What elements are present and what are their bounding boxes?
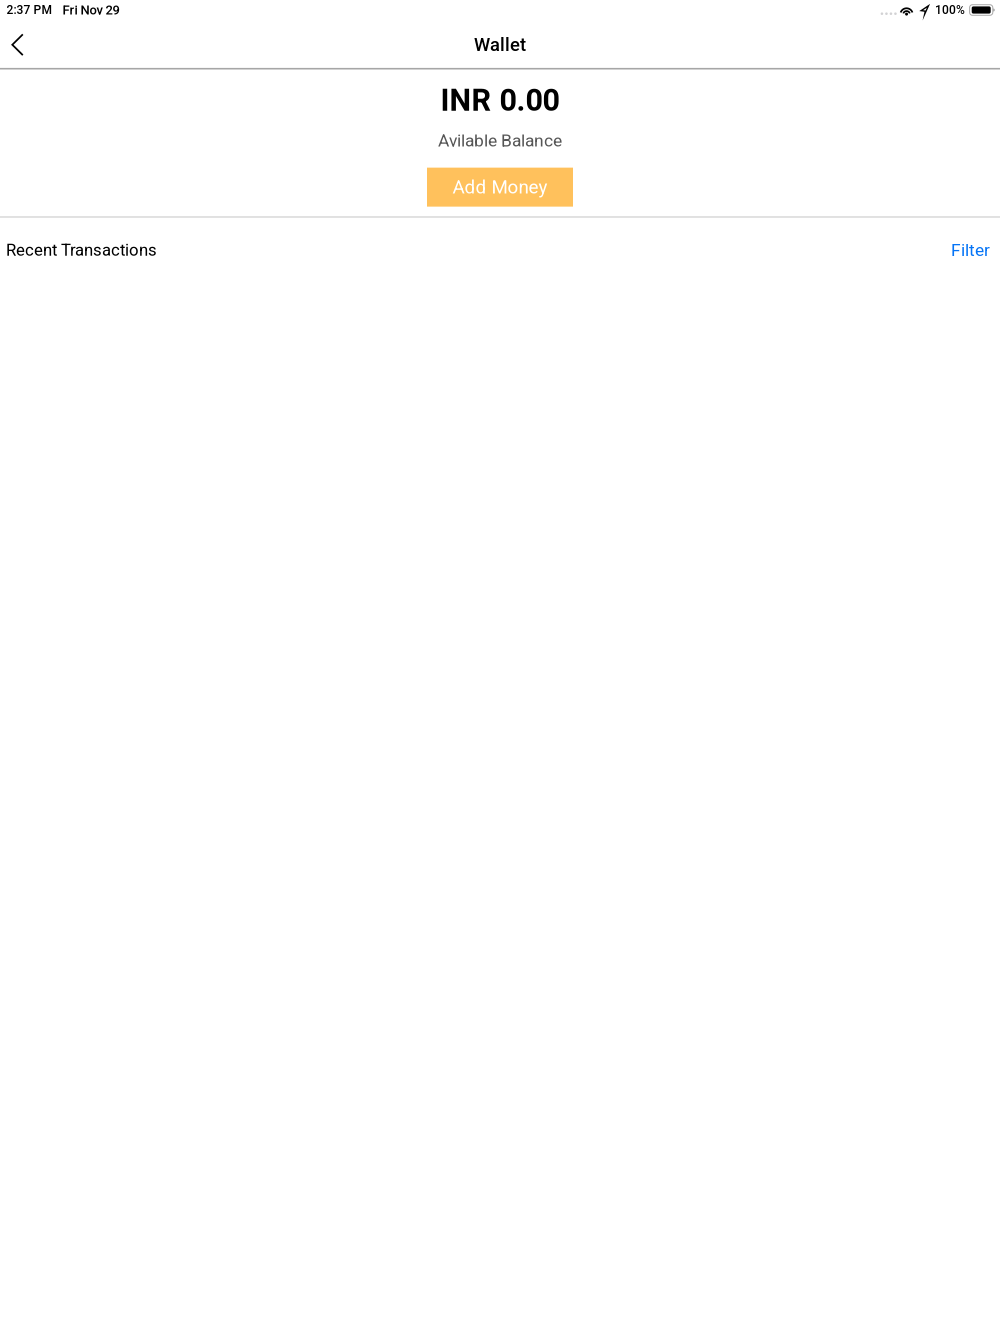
staticText: Add Money bbox=[452, 176, 547, 198]
button[interactable]: Add Money bbox=[427, 168, 573, 207]
staticText: INR 0.00 bbox=[440, 82, 559, 118]
button[interactable]: Back bbox=[0, 20, 38, 69]
staticText: Avilable Balance bbox=[438, 130, 562, 151]
staticText: Filter bbox=[951, 240, 990, 260]
staticText: Wallet bbox=[474, 34, 526, 56]
button[interactable]: Filter bbox=[951, 240, 990, 260]
staticText: 2:37 PM bbox=[6, 3, 51, 17]
staticText: Fri Nov 29 bbox=[62, 2, 119, 18]
staticText: 100% bbox=[935, 3, 965, 17]
staticText: Recent Transactions bbox=[6, 240, 157, 260]
